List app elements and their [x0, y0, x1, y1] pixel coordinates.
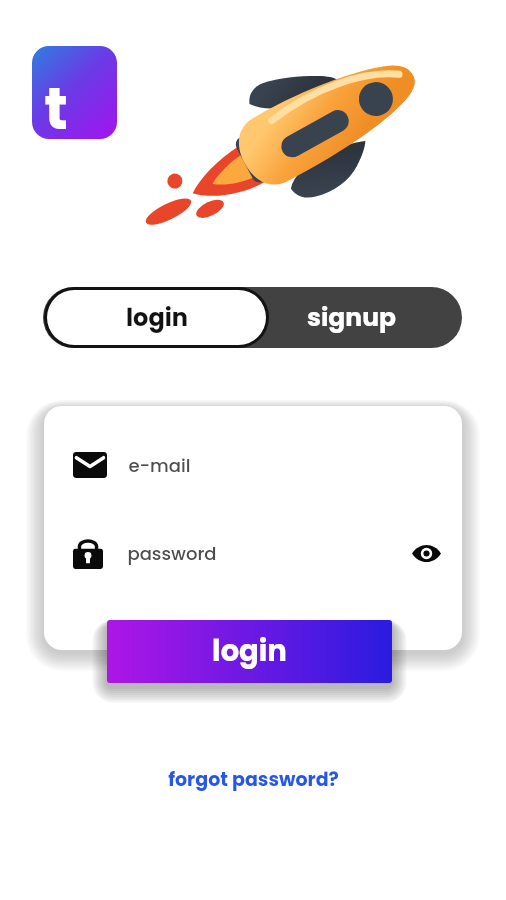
staticText: forgot password?	[168, 766, 339, 793]
staticText: signup	[307, 300, 396, 335]
staticText: e-mail	[128, 453, 191, 478]
button[interactable]: forgot password?	[153, 760, 353, 798]
staticText: t	[44, 68, 68, 139]
staticText: login	[126, 301, 188, 335]
button[interactable]: App logo	[32, 46, 117, 139]
button[interactable]: Show password	[406, 533, 446, 573]
button[interactable]: password	[44, 524, 462, 582]
staticText: login	[212, 631, 287, 672]
button[interactable]: signup	[269, 287, 433, 348]
button[interactable]: e-mail	[44, 436, 462, 494]
button[interactable]: login	[107, 620, 392, 683]
button[interactable]: login	[47, 290, 266, 345]
staticText: password	[127, 541, 217, 566]
